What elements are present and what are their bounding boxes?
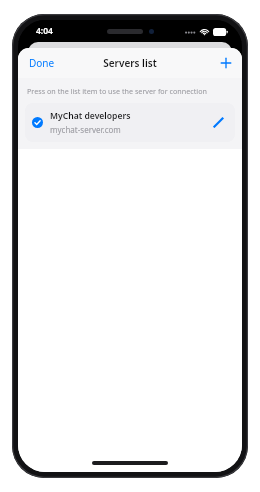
button[interactable]: MyChat developers — [25, 103, 235, 142]
staticText: Done — [29, 56, 55, 70]
staticText: Servers list — [103, 56, 157, 70]
button[interactable]: Edit server — [210, 114, 227, 131]
staticText: 4:04 — [36, 25, 53, 37]
button[interactable]: Done — [18, 50, 66, 76]
staticText: Press on the list item to use the server… — [27, 86, 207, 96]
staticText: MyChat developers — [50, 110, 131, 122]
button[interactable]: Add server — [210, 52, 242, 74]
staticText: mychat-server.com — [50, 124, 121, 135]
